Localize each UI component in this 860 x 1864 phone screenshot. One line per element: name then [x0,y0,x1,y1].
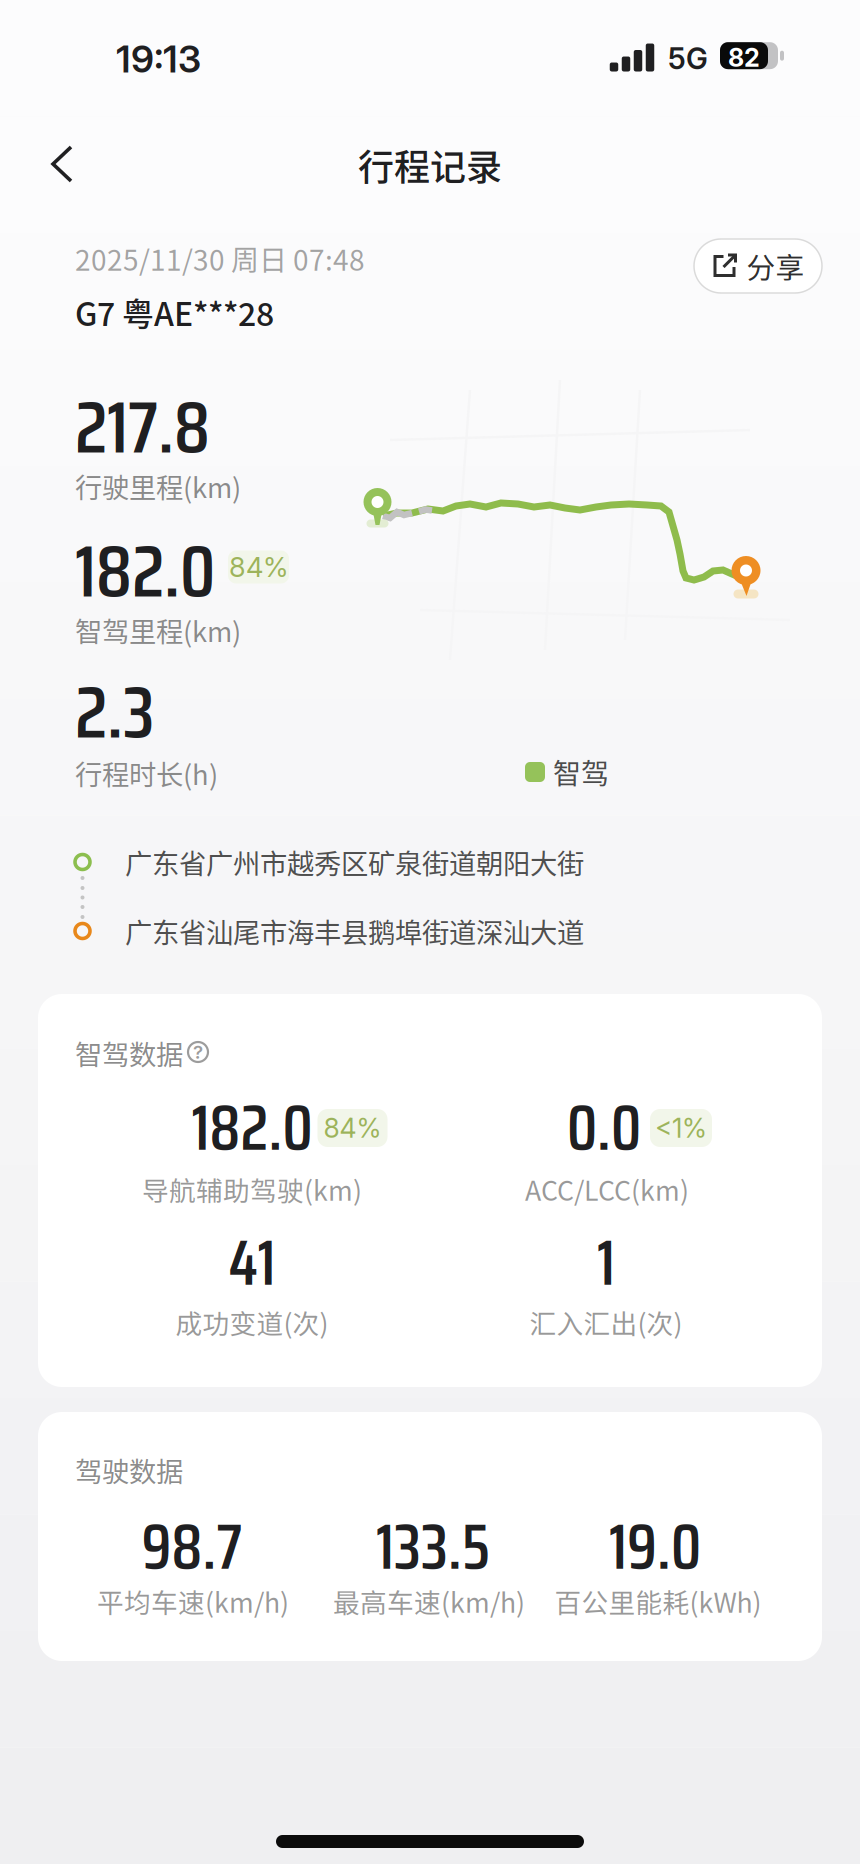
staticText: 智驾 [553,752,609,792]
staticText: 驾驶数据 [75,1450,183,1490]
staticText: 分享 [746,245,804,287]
staticText: G7 粤AE***28 [75,289,274,335]
staticText: 最高车速(km/h) [333,1582,525,1620]
staticText: 133.5 [376,1498,490,1596]
staticText: 82 [728,42,760,73]
staticText: 1 [597,1214,615,1312]
staticText: 行驶里程(km) [75,466,241,506]
staticText: 智驾里程(km) [75,610,241,650]
staticText: 19:13 [116,36,201,82]
staticText: ACC/LCC(km) [525,1170,689,1208]
staticText: 41 [228,1214,275,1312]
staticText: 182.0 [75,513,215,629]
staticText: 成功变道(次) [175,1303,328,1341]
staticText: 5G [668,41,708,76]
button[interactable]: 分享 [694,239,822,293]
staticText: 2.3 [75,654,154,770]
staticText: 百公里能耗(kWh) [554,1582,761,1620]
staticText: 汇入汇出(次) [529,1303,682,1341]
staticText: 智驾数据 [75,1033,183,1073]
staticText: 19.0 [609,1498,701,1596]
staticText: 2025/11/30 周日 07:48 [75,238,365,279]
staticText: <1% [655,1112,707,1144]
staticText: 217.8 [75,369,210,485]
staticText: ? [193,1041,203,1063]
staticText: 导航辅助驾驶(km) [142,1170,362,1208]
staticText: 182.0 [191,1079,312,1177]
button[interactable] [40,142,84,186]
staticText: 行程记录 [358,139,502,191]
staticText: 84% [229,550,288,584]
staticText: 广东省汕尾市海丰县鹅埠街道深汕大道 [125,911,584,951]
staticText: 0.0 [567,1079,641,1177]
staticText: 广东省广州市越秀区矿泉街道朝阳大街 [125,842,584,882]
staticText: 98.7 [141,1498,242,1596]
staticText: 行程时长(h) [75,753,218,793]
staticText: 平均车速(km/h) [97,1582,289,1620]
staticText: 84% [323,1112,381,1144]
button[interactable]: ? [186,1040,210,1064]
